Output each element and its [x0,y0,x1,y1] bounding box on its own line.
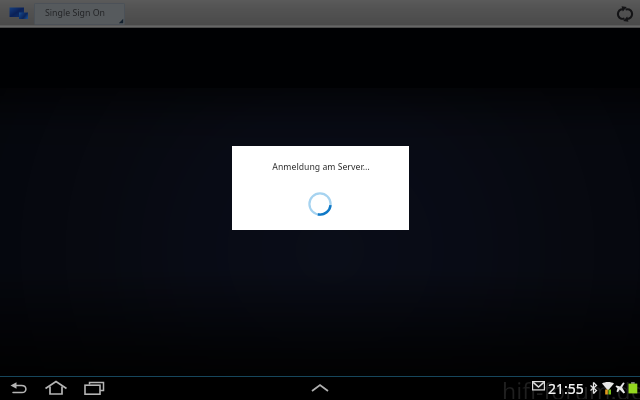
button[interactable]: Notifications [304,376,336,400]
staticText: Anmeldung am Server… [272,161,370,173]
button[interactable]: Status [524,376,640,400]
button[interactable]: App [6,4,32,22]
button[interactable]: Refresh [610,0,640,28]
staticText: hifi-forum.de [502,375,640,399]
button[interactable]: Back [3,376,35,400]
staticText: 21:55 [548,379,584,398]
button[interactable]: Home [40,376,72,400]
button[interactable]: Recent apps [78,376,110,400]
button[interactable]: Single Sign On [34,3,125,25]
staticText: Single Sign On [45,7,106,19]
